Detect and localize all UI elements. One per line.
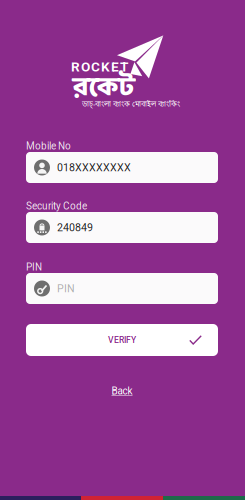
staticText: Mobile No	[26, 140, 71, 152]
staticText: R O C K E T	[71, 59, 128, 75]
staticText: PIN	[26, 261, 42, 273]
staticText: 240849	[57, 221, 93, 234]
staticText: 018XXXXXXXX	[57, 161, 131, 174]
staticText: PIN	[57, 282, 75, 295]
staticText: ডাচ্-বাংলা ব্যাংক মোবাইল ব্যাংকিং	[82, 100, 180, 109]
staticText: Back	[111, 385, 132, 397]
staticText: রকেট	[73, 66, 135, 111]
button[interactable]: VERIFY	[26, 324, 218, 356]
button[interactable]: Back	[26, 380, 218, 402]
staticText: Security Code	[26, 200, 87, 212]
staticText: VERIFY	[108, 335, 136, 345]
